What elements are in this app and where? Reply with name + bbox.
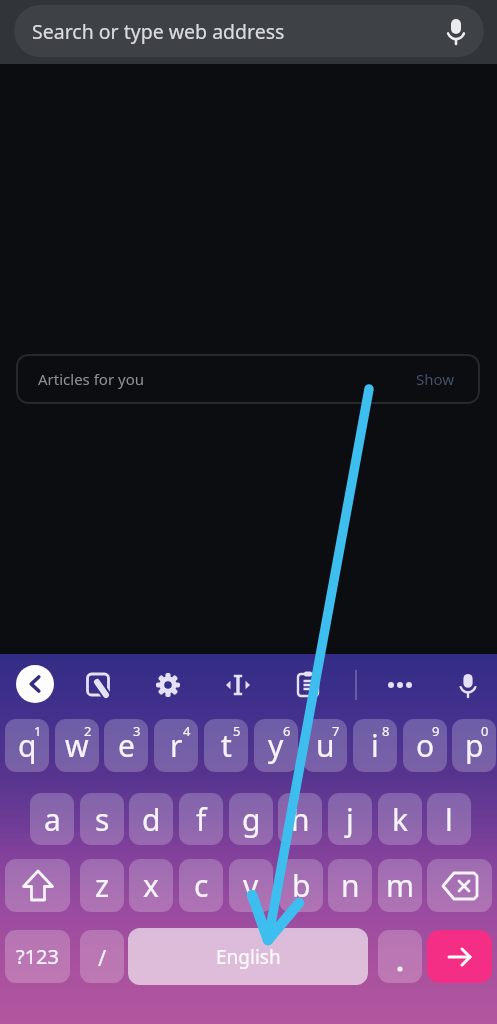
staticText: 2 — [84, 722, 92, 740]
staticText: p — [465, 725, 484, 766]
button[interactable]: n — [328, 859, 372, 912]
button[interactable] — [378, 930, 422, 983]
button[interactable]: / — [80, 930, 124, 983]
button[interactable]: d — [129, 793, 173, 845]
button[interactable]: w — [55, 719, 99, 772]
staticText: c — [194, 865, 209, 906]
button[interactable]: Articles for you — [16, 354, 480, 404]
staticText: w — [65, 725, 89, 766]
button[interactable] — [427, 930, 492, 983]
staticText: e — [118, 725, 135, 766]
button[interactable]: ?123 — [5, 930, 70, 983]
staticText: / — [98, 942, 107, 972]
button[interactable]: e — [104, 719, 148, 772]
button[interactable]: o — [403, 719, 447, 772]
staticText: q — [18, 725, 37, 766]
button[interactable] — [148, 665, 188, 705]
button[interactable]: i — [353, 719, 397, 772]
staticText: t — [221, 725, 232, 766]
staticText: o — [416, 725, 435, 766]
staticText: d — [142, 799, 161, 840]
staticText: l — [445, 799, 453, 840]
button[interactable]: b — [279, 859, 323, 912]
button[interactable]: j — [328, 793, 372, 845]
button[interactable]: z — [80, 859, 124, 912]
button[interactable] — [5, 859, 70, 912]
staticText: j — [346, 799, 354, 840]
button[interactable]: q — [5, 719, 49, 772]
button[interactable]: f — [179, 793, 223, 845]
staticText: 3 — [133, 722, 141, 740]
staticText: z — [95, 865, 110, 906]
staticText: 4 — [183, 722, 191, 740]
staticText: n — [341, 865, 360, 906]
staticText: x — [143, 865, 159, 906]
button[interactable]: l — [427, 793, 471, 845]
button[interactable] — [448, 665, 488, 705]
button[interactable]: v — [229, 859, 273, 912]
staticText: h — [291, 799, 310, 840]
button[interactable]: English — [128, 928, 368, 985]
staticText: 8 — [382, 722, 390, 740]
staticText: 6 — [283, 722, 291, 740]
button[interactable]: u — [303, 719, 347, 772]
button[interactable] — [78, 665, 118, 705]
button[interactable] — [288, 665, 328, 705]
staticText: 9 — [432, 722, 440, 740]
staticText: English — [216, 944, 281, 970]
staticText: 5 — [233, 722, 241, 740]
button[interactable]: y — [254, 719, 298, 772]
staticText: u — [316, 725, 335, 766]
staticText: i — [371, 725, 379, 766]
button[interactable]: c — [179, 859, 223, 912]
staticText: b — [292, 865, 311, 906]
staticText: v — [243, 865, 259, 906]
staticText: a — [44, 799, 61, 840]
staticText: 7 — [332, 722, 340, 740]
button[interactable] — [380, 665, 420, 705]
staticText: g — [242, 799, 261, 840]
button[interactable]: g — [229, 793, 273, 845]
button[interactable] — [218, 665, 258, 705]
button[interactable]: k — [378, 793, 422, 845]
staticText: Articles for you — [38, 369, 145, 389]
staticText: ?123 — [16, 943, 59, 970]
button[interactable]: t — [204, 719, 248, 772]
staticText: Search or type web address — [32, 18, 285, 45]
staticText: m — [386, 865, 415, 906]
staticText: y — [268, 725, 284, 766]
staticText: s — [95, 799, 110, 840]
staticText: r — [170, 725, 183, 766]
staticText: f — [196, 799, 207, 840]
button[interactable]: s — [80, 793, 124, 845]
button[interactable]: Search or type web address — [14, 5, 484, 57]
button[interactable]: a — [30, 793, 74, 845]
button[interactable]: m — [378, 859, 422, 912]
staticText: 1 — [34, 722, 42, 740]
staticText: Show — [416, 369, 455, 389]
button[interactable] — [427, 859, 492, 912]
button[interactable]: h — [278, 793, 322, 845]
button[interactable]: p — [452, 719, 496, 772]
staticText: 0 — [481, 722, 489, 740]
button[interactable]: r — [154, 719, 198, 772]
button[interactable] — [16, 665, 54, 703]
staticText: k — [392, 799, 409, 840]
button[interactable]: x — [129, 859, 173, 912]
